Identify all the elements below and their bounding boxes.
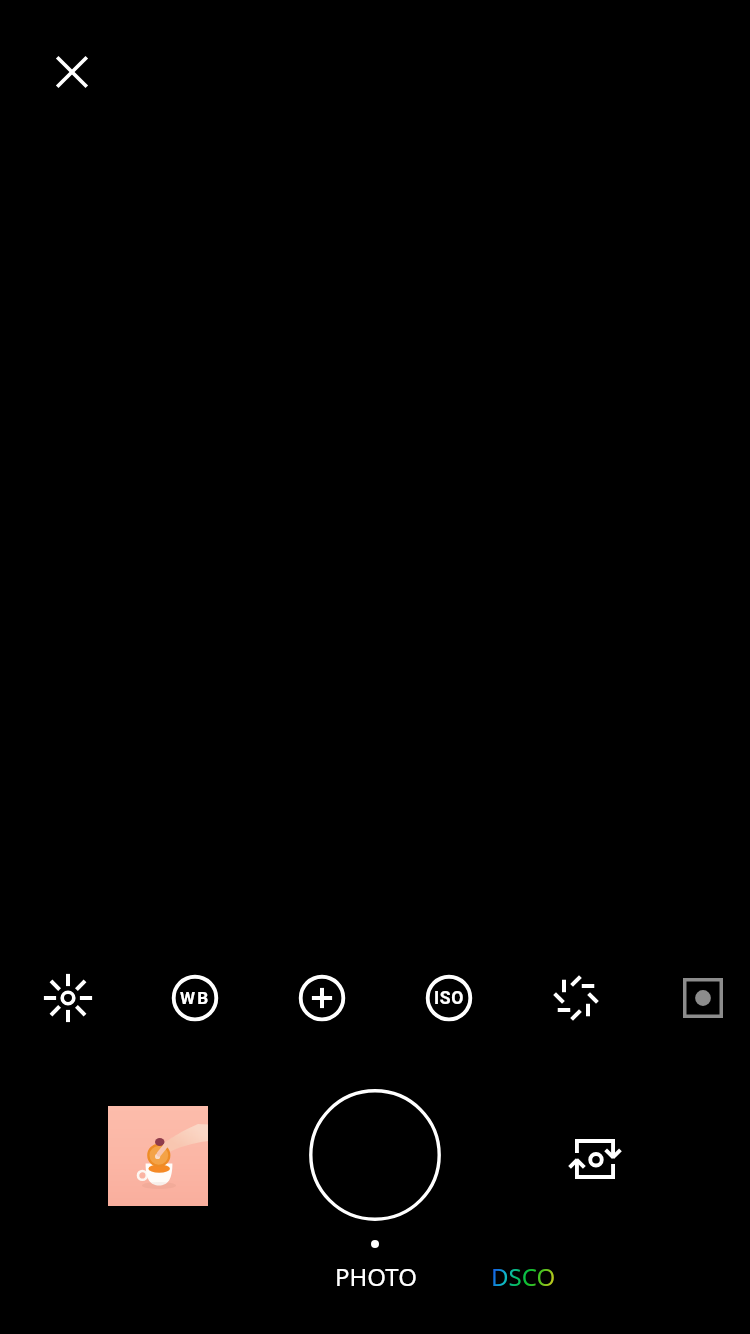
button[interactable]: Flash bbox=[550, 972, 602, 1024]
button[interactable]: Grid bbox=[677, 972, 729, 1024]
staticText: DSCO bbox=[491, 1260, 556, 1293]
button[interactable]: Switch camera bbox=[567, 1131, 625, 1189]
button[interactable]: Close camera bbox=[46, 46, 98, 98]
button[interactable]: Take photo bbox=[309, 1089, 441, 1221]
button[interactable]: ISO bbox=[423, 972, 475, 1024]
staticText: PHOTO bbox=[335, 1260, 417, 1293]
button[interactable]: Exposure compensation bbox=[296, 972, 348, 1024]
staticText: ISO bbox=[434, 988, 464, 1009]
staticText: WB bbox=[180, 988, 211, 1008]
button[interactable]: Open gallery bbox=[108, 1106, 208, 1206]
button[interactable]: White balance bbox=[169, 972, 221, 1024]
button[interactable]: DSCO bbox=[463, 1258, 583, 1294]
button[interactable]: Exposure bbox=[42, 972, 94, 1024]
button[interactable]: PHOTO bbox=[311, 1258, 441, 1294]
